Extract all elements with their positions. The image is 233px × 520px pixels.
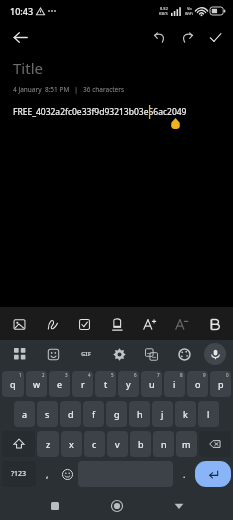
button[interactable]: h [129,401,150,427]
button[interactable]: Translate [138,341,164,367]
staticText: n [161,438,167,450]
staticText: 2 [42,372,45,378]
staticText: j [161,408,164,420]
button[interactable]: x [61,431,82,457]
staticText: 7 [157,372,160,378]
button[interactable]: v [107,431,128,457]
staticText: z [46,438,51,450]
staticText: e [57,378,63,390]
staticText: 0 [226,372,229,378]
button[interactable]: Voice input [204,343,226,365]
staticText: 8 [180,372,183,378]
button[interactable]: , [38,461,56,487]
button[interactable]: Decrease text size [168,311,194,337]
button[interactable]: Themes [171,341,197,367]
staticText: 8.82 [160,6,168,11]
button[interactable]: o [187,371,208,397]
button[interactable]: Backspace [199,431,231,457]
button[interactable]: Enter [195,461,231,487]
button[interactable]: Draw [39,311,65,337]
button[interactable]: n [153,431,174,457]
staticText: c [92,438,97,450]
button[interactable]: Apps [7,341,33,367]
button[interactable]: a [14,401,35,427]
staticText: WiFi [185,11,193,16]
button[interactable]: r [72,371,93,397]
button[interactable]: GIF [73,341,99,367]
button[interactable]: Recents [39,492,71,520]
staticText: GIF [81,350,91,358]
staticText: q [10,378,16,390]
staticText: w [33,378,41,390]
button[interactable]: Emoji [58,461,76,487]
button[interactable]: Back [5,22,35,52]
button[interactable]: Settings [106,341,132,367]
staticText: 6 [134,372,137,378]
staticText: f [92,408,96,420]
staticText: b [138,438,144,450]
button[interactable]: Increase text size [136,311,162,337]
button[interactable]: g [106,401,127,427]
staticText: FREE_4032a2fc0e33f9d93213b03e56ac2049 [13,106,187,118]
staticText: 1 [19,372,22,378]
staticText: u [149,378,155,390]
staticText: 4 [88,372,91,378]
staticText: g [114,408,120,420]
staticText: m [182,438,191,450]
button[interactable]: s [37,401,58,427]
button[interactable]: Bold [201,311,227,337]
staticText: 3 [65,372,68,378]
button[interactable]: k [175,401,196,427]
staticText: p [218,378,224,390]
staticText: ?123 [11,469,27,479]
staticText: t [104,378,108,390]
button[interactable]: . [175,461,193,487]
staticText: , [46,468,49,480]
button[interactable]: Highlight [104,311,130,337]
button[interactable]: z [37,431,59,457]
button[interactable]: f [83,401,104,427]
button[interactable]: b [130,431,151,457]
staticText: o [195,378,201,390]
button[interactable]: Undo [145,23,173,51]
button[interactable]: Save [201,23,229,51]
staticText: . [183,468,186,480]
button[interactable]: u [141,371,162,397]
staticText: Vo [187,6,192,11]
button[interactable]: ?123 [2,461,36,487]
button[interactable]: j [152,401,173,427]
staticText: 9 [203,372,206,378]
button[interactable]: Checklist [71,311,97,337]
button[interactable]: y [118,371,139,397]
staticText: Title [13,58,43,78]
button[interactable]: e [49,371,70,397]
button[interactable]: Insert image [6,311,32,337]
button[interactable]: Home [101,492,133,520]
button[interactable]: q [2,371,24,397]
staticText: v [115,438,120,450]
staticText: KB/S [159,11,168,16]
staticText: 4 January 8:51 PM | 36 characters [13,85,125,94]
button[interactable]: l [198,401,219,427]
staticText: d [68,408,74,420]
button[interactable]: i [164,371,185,397]
staticText: i [173,378,176,390]
button[interactable]: p [210,371,231,397]
button[interactable]: Hide keyboard [163,492,195,520]
staticText: 10:43 [10,5,34,17]
staticText: h [137,408,143,420]
button[interactable]: w [26,371,47,397]
staticText: y [126,378,131,390]
staticText: x [69,438,74,450]
button[interactable]: t [95,371,116,397]
button[interactable]: Redo [173,23,201,51]
staticText: l [207,408,210,420]
staticText: k [183,408,188,420]
staticText: 5 [111,372,114,378]
button[interactable]: Shift [2,431,35,457]
button[interactable]: c [84,431,105,457]
button[interactable]: d [60,401,81,427]
button[interactable]: Stickers [40,341,66,367]
button[interactable]: m [176,431,197,457]
